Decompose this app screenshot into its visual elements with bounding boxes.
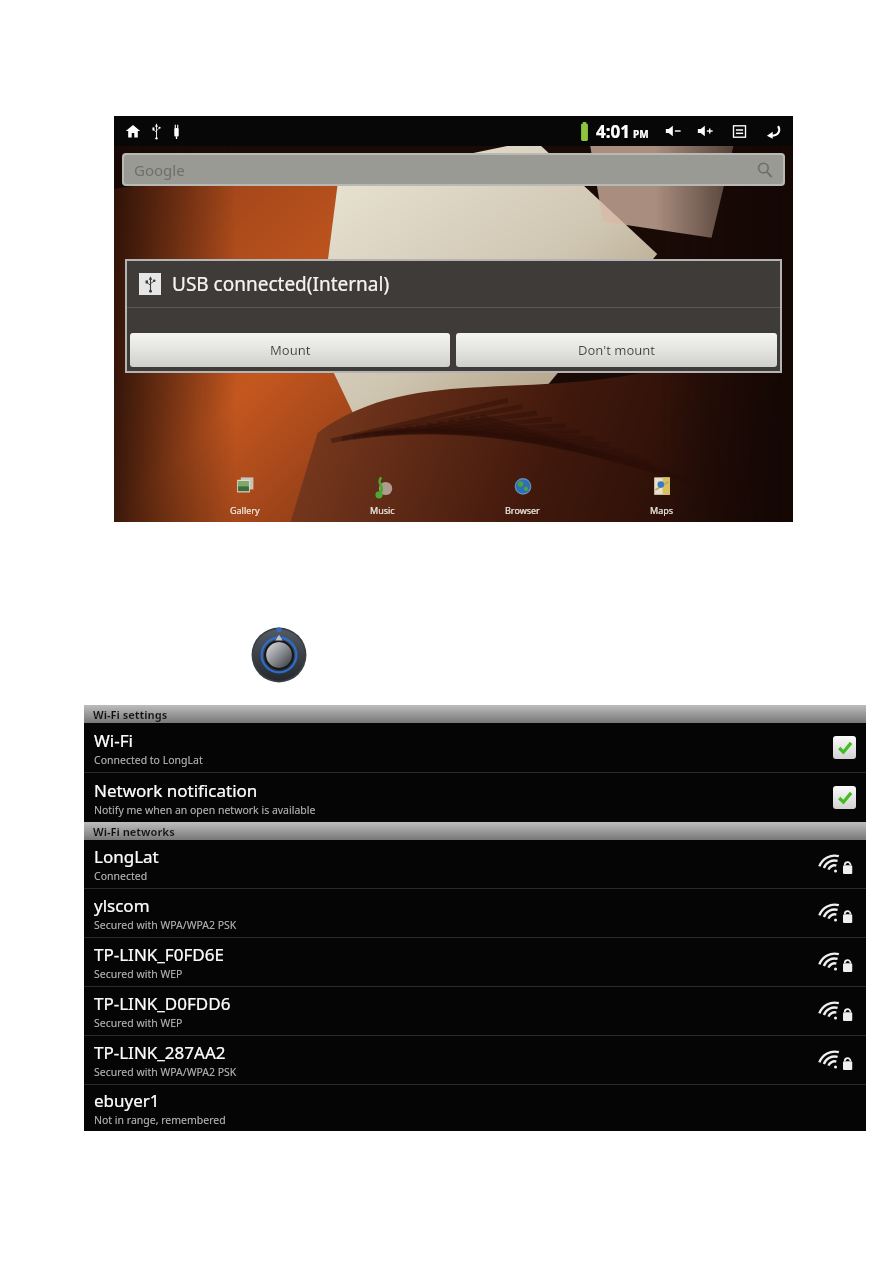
button[interactable]: Music bbox=[365, 470, 399, 518]
button[interactable]: Volume up bbox=[693, 119, 717, 143]
button[interactable]: Don't mount bbox=[456, 333, 777, 367]
staticText: 4:01 bbox=[596, 120, 630, 143]
button[interactable]: Google bbox=[122, 153, 785, 186]
staticText: Don't mount bbox=[578, 341, 656, 359]
button[interactable]: Mount bbox=[130, 333, 450, 367]
staticText: TP-LINK_D0FDD6 bbox=[94, 992, 231, 1015]
staticText: Secured with WEP bbox=[94, 967, 183, 981]
staticText: Gallery bbox=[230, 504, 260, 516]
button[interactable]: Menu bbox=[727, 119, 751, 143]
button[interactable]: Maps bbox=[645, 470, 679, 518]
staticText: ebuyer1 bbox=[94, 1089, 160, 1112]
staticText: Secured with WPA/WPA2 PSK bbox=[94, 1065, 237, 1079]
button[interactable]: Back bbox=[761, 119, 785, 143]
button[interactable]: Gallery bbox=[228, 470, 262, 518]
button[interactable]: Home bbox=[122, 120, 144, 142]
staticText: TP-LINK_F0FD6E bbox=[94, 943, 224, 966]
staticText: PM bbox=[633, 127, 649, 141]
button[interactable]: Wi-Fi checkbox bbox=[833, 736, 856, 759]
staticText: Connected bbox=[94, 869, 148, 883]
staticText: Secured with WPA/WPA2 PSK bbox=[94, 918, 237, 932]
staticText: Wi-Fi settings bbox=[93, 707, 168, 722]
button[interactable]: Volume down bbox=[661, 119, 685, 143]
staticText: Not in range, remembered bbox=[94, 1113, 226, 1127]
button[interactable]: LongLat bbox=[84, 840, 866, 888]
staticText: Network notification bbox=[94, 779, 258, 802]
button[interactable]: Wi-Fi bbox=[84, 723, 866, 772]
staticText: USB connected(Internal) bbox=[172, 271, 390, 297]
button[interactable]: ylscom bbox=[84, 889, 866, 937]
staticText: TP-LINK_287AA2 bbox=[94, 1041, 226, 1064]
staticText: Wi-Fi bbox=[94, 729, 133, 752]
button[interactable]: TP-LINK_D0FDD6 bbox=[84, 987, 866, 1035]
button[interactable]: TP-LINK_287AA2 bbox=[84, 1036, 866, 1084]
staticText: Wi-Fi networks bbox=[93, 824, 175, 839]
staticText: Secured with WEP bbox=[94, 1016, 183, 1030]
staticText: Connected to LongLat bbox=[94, 753, 203, 767]
staticText: Mount bbox=[270, 341, 311, 359]
button[interactable]: Network notification checkbox bbox=[833, 786, 856, 809]
staticText: Google bbox=[134, 160, 185, 180]
button[interactable]: Network notification bbox=[84, 773, 866, 822]
button[interactable]: Browser bbox=[503, 470, 542, 518]
staticText: Music bbox=[370, 504, 395, 516]
staticText: Notify me when an open network is availa… bbox=[94, 803, 316, 817]
staticText: ylscom bbox=[94, 894, 150, 917]
button[interactable]: TP-LINK_F0FD6E bbox=[84, 938, 866, 986]
staticText: LongLat bbox=[94, 845, 159, 868]
button[interactable]: ebuyer1 bbox=[84, 1085, 866, 1131]
staticText: Browser bbox=[505, 504, 540, 516]
staticText: Maps bbox=[650, 504, 674, 516]
